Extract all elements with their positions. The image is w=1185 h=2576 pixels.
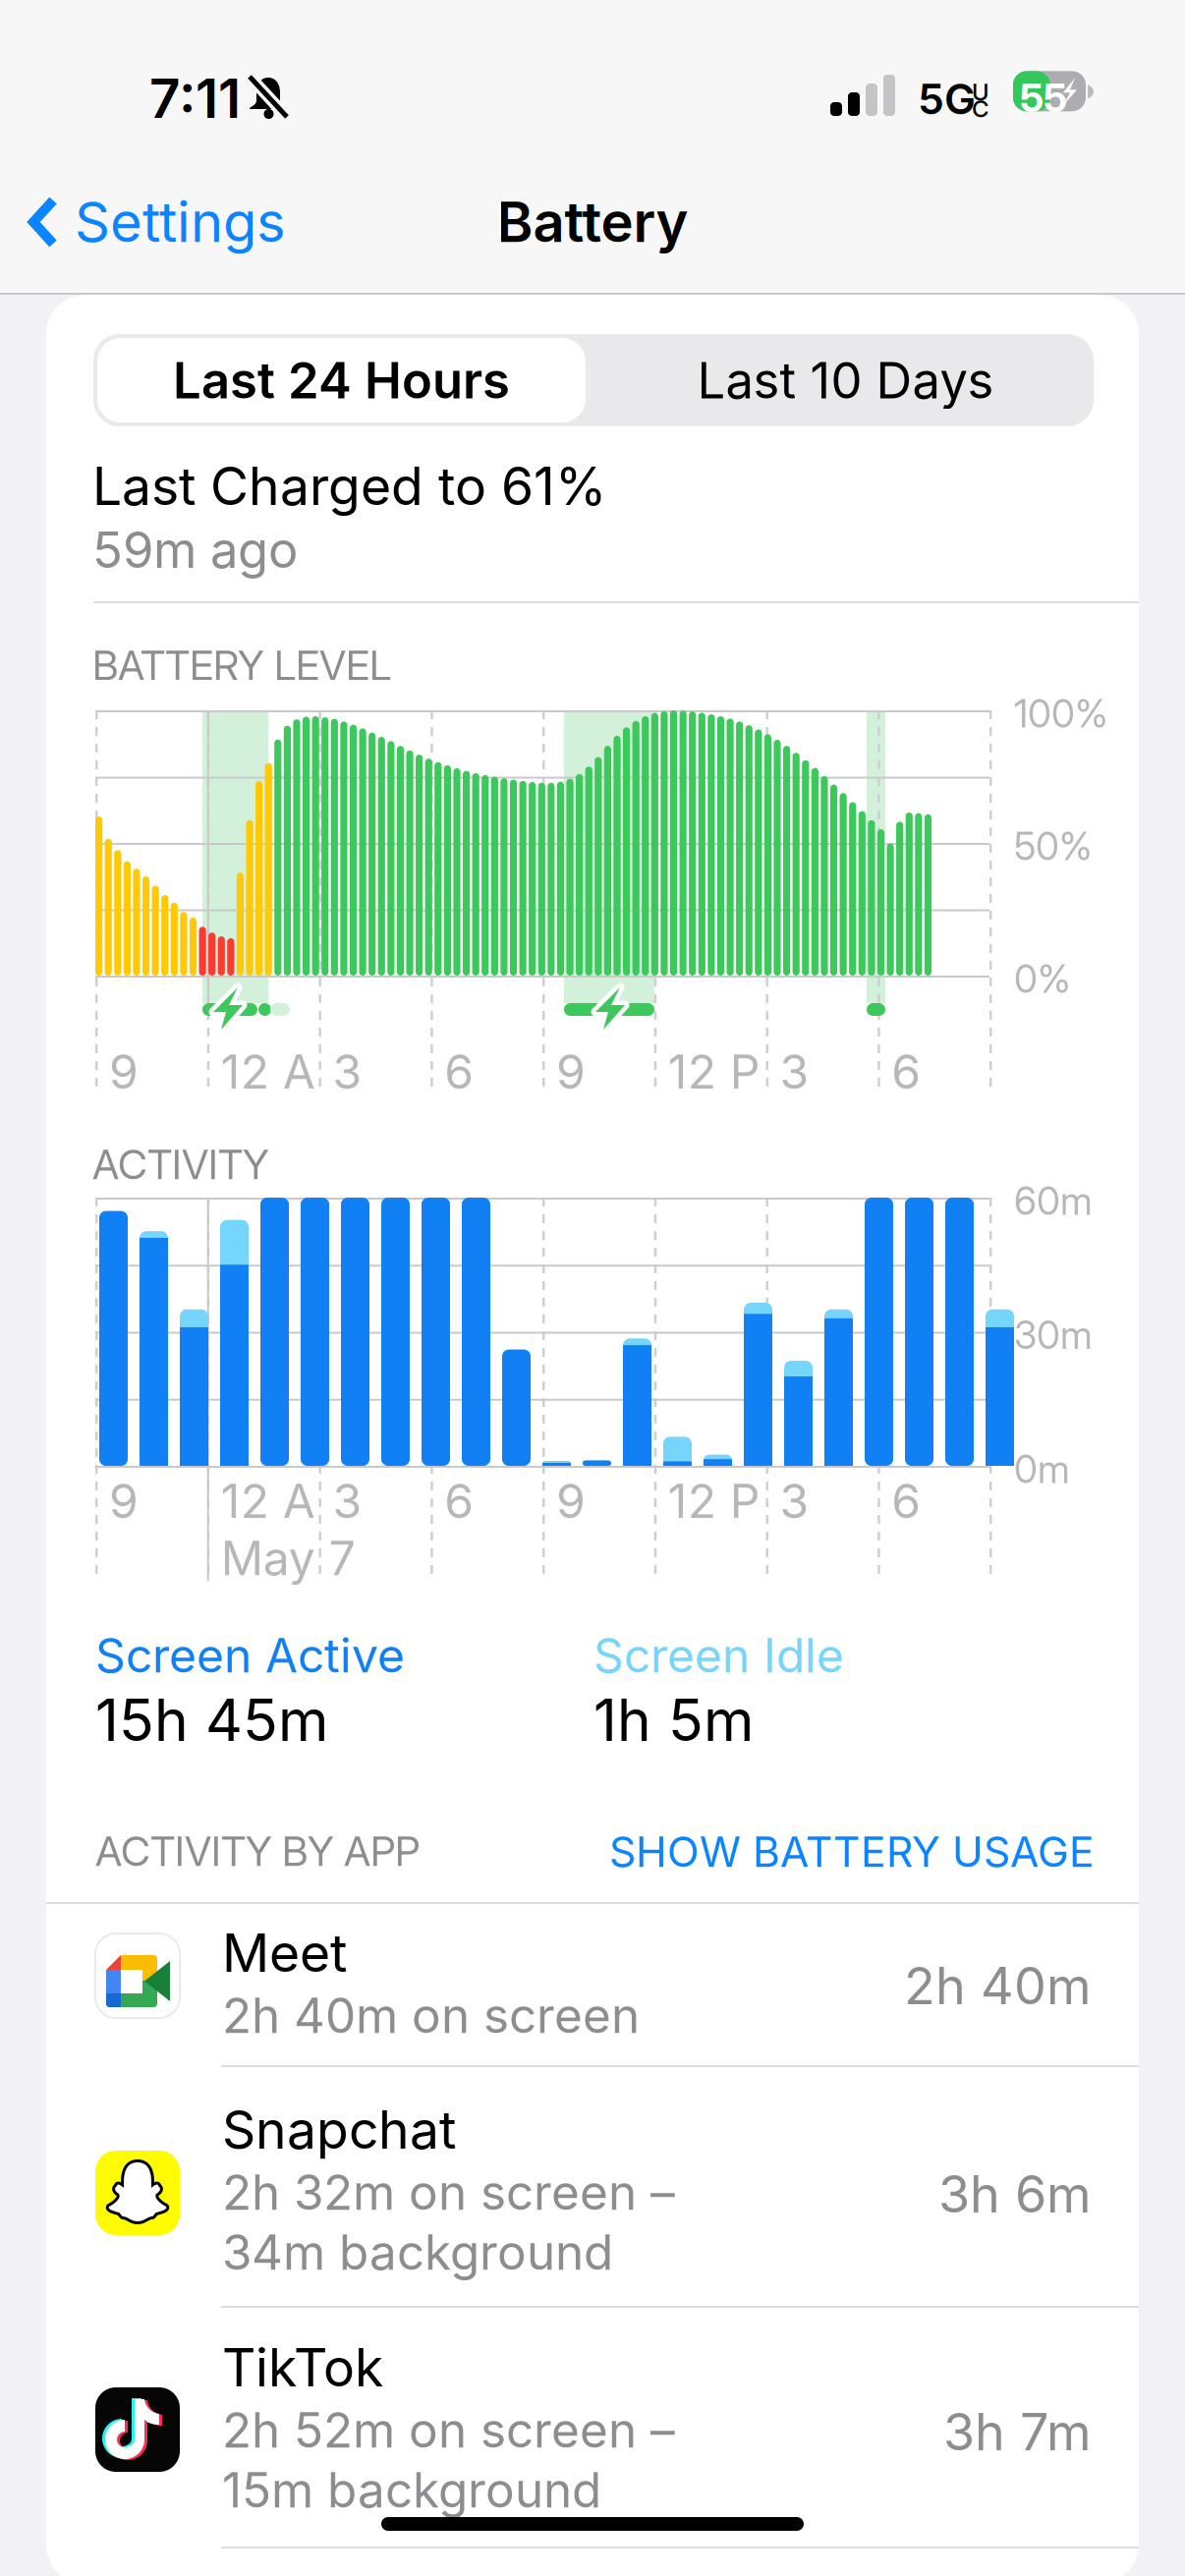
staticText: 3 <box>780 1043 809 1100</box>
staticText: 9 <box>556 1043 586 1100</box>
staticText: Screen Idle <box>593 1627 844 1684</box>
staticText: 2h 40m <box>904 1955 1092 2017</box>
staticText: 6 <box>444 1472 474 1529</box>
staticText: Battery <box>497 189 688 255</box>
staticText: U <box>972 78 989 106</box>
button[interactable]: TikTok <box>46 2308 1139 2547</box>
staticText: 1h 5m <box>593 1685 754 1755</box>
staticText: 100% <box>1014 691 1108 737</box>
staticText: ACTIVITY <box>92 1140 269 1189</box>
staticText: Screen Active <box>95 1627 405 1684</box>
staticText: 3 <box>780 1472 809 1529</box>
staticText: 6 <box>891 1043 921 1100</box>
staticText: Snapchat <box>222 2098 456 2161</box>
staticText: Last 10 Days <box>697 350 994 410</box>
staticText: BATTERY LEVEL <box>92 641 391 690</box>
staticText: 15m background <box>222 2460 601 2519</box>
staticText: TikTok <box>222 2336 383 2399</box>
staticText: 12 P <box>668 1472 760 1529</box>
staticText: 2h 52m on screen – <box>222 2400 675 2459</box>
staticText: 3h 6m <box>938 2163 1092 2225</box>
staticText: 2h 40m on screen <box>222 1986 640 2044</box>
button[interactable]: Meet <box>46 1904 1139 2065</box>
staticText: 0m <box>1014 1446 1070 1492</box>
staticText: 59m ago <box>92 520 298 580</box>
staticText: SHOW BATTERY USAGE <box>609 1826 1095 1877</box>
button[interactable]: Snapchat <box>46 2067 1139 2306</box>
staticText: 6 <box>444 1043 474 1100</box>
staticText: 9 <box>556 1472 586 1529</box>
staticText: 55 <box>1020 74 1067 122</box>
button[interactable]: Last 24 Hours <box>97 334 586 426</box>
staticText: ACTIVITY BY APP <box>95 1827 420 1876</box>
staticText: 5G <box>918 74 976 124</box>
staticText: Meet <box>222 1921 347 1984</box>
staticText: C <box>972 94 989 123</box>
staticText: 34m background <box>222 2223 613 2281</box>
staticText: Last 24 Hours <box>173 350 510 410</box>
button[interactable]: Last 10 Days <box>601 334 1090 426</box>
staticText: Settings <box>75 189 286 255</box>
staticText: Last Charged to 61% <box>92 454 606 518</box>
staticText: 15h 45m <box>95 1685 328 1755</box>
staticText: 9 <box>109 1472 139 1529</box>
staticText: 12 A <box>221 1472 315 1529</box>
staticText: 2h 32m on screen – <box>222 2163 675 2221</box>
staticText: 9 <box>109 1043 139 1100</box>
button[interactable]: Settings <box>0 167 310 277</box>
button[interactable]: SHOW BATTERY USAGE <box>544 1816 1095 1887</box>
staticText: 3 <box>333 1043 362 1100</box>
staticText: 3 <box>333 1472 362 1529</box>
staticText: 3h 7m <box>943 2401 1092 2463</box>
staticText: 12 P <box>668 1043 760 1100</box>
staticText: 60m <box>1014 1178 1093 1224</box>
staticText: 50% <box>1014 823 1093 869</box>
staticText: 30m <box>1014 1312 1093 1358</box>
staticText: 0% <box>1014 956 1071 1002</box>
staticText: 12 A <box>221 1043 315 1100</box>
staticText: 7:11 <box>149 66 241 131</box>
staticText: 6 <box>891 1472 921 1529</box>
staticText: May 7 <box>221 1529 355 1586</box>
